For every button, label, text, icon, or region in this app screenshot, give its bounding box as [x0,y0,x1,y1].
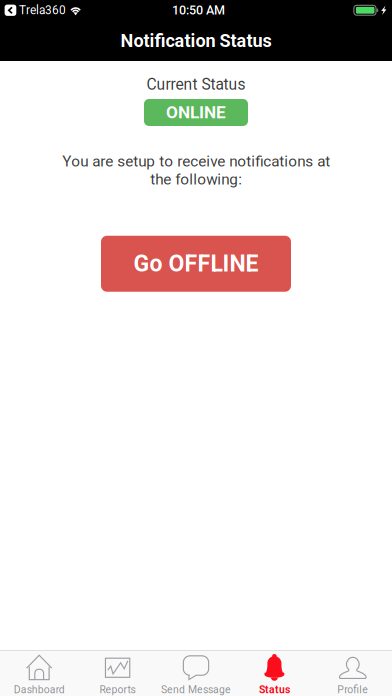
button[interactable]: Dashboard [0,651,78,696]
staticText: Notification Status [120,30,271,51]
button[interactable]: Go OFFLINE [101,236,291,292]
staticText: Send Message [161,684,231,696]
staticText: ONLINE [166,102,226,123]
button[interactable]: Reports [78,651,157,696]
button[interactable]: ONLINE [144,99,248,126]
staticText: Trela360 [19,3,66,17]
staticText: Profile [337,684,368,696]
staticText: Current Status [146,75,245,94]
staticText: Reports [100,684,136,696]
staticText: Go OFFLINE [133,250,258,277]
staticText: Dashboard [14,684,65,696]
button[interactable]: Send Message [157,651,235,696]
staticText: 10:50 AM [172,3,225,18]
button[interactable]: Profile [314,651,392,696]
button[interactable]: Status [235,651,314,696]
staticText: You are setup to receive notifications a… [62,152,330,188]
staticText: Status [259,684,290,696]
